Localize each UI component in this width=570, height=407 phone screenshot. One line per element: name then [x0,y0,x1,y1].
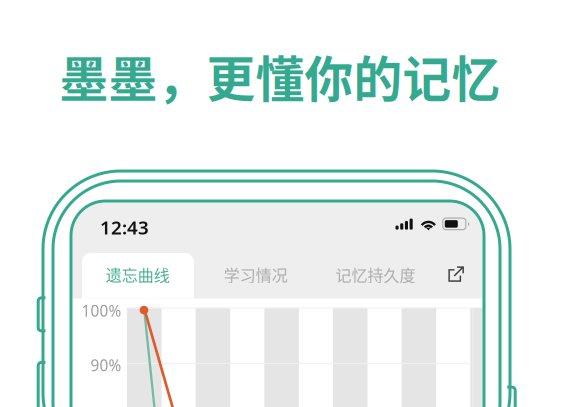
staticText: 记忆持久度 [336,263,416,286]
staticText: 12:43 [100,214,149,240]
staticText: 90% [90,355,121,376]
staticText: 100% [81,300,121,321]
button[interactable]: Share [436,252,476,296]
button[interactable]: 学习情况 [200,252,312,296]
staticText: 墨墨，更懂你的记忆 [59,41,500,111]
staticText: 遗忘曲线 [106,263,170,286]
button[interactable]: 遗忘曲线 [82,252,194,296]
button[interactable]: 记忆持久度 [320,252,432,296]
staticText: 学习情况 [224,263,288,286]
